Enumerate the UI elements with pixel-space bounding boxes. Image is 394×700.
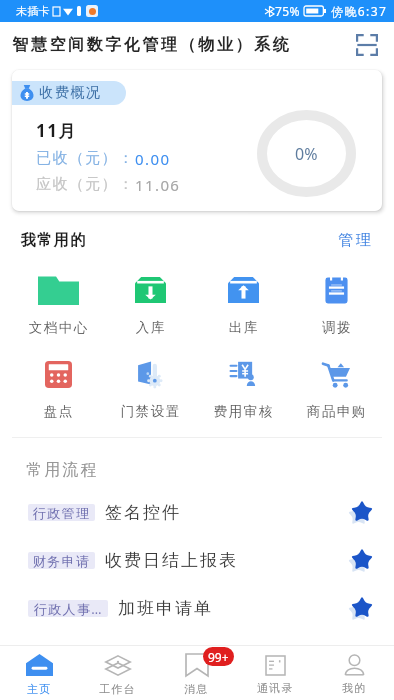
staticText: 主页 bbox=[27, 682, 52, 696]
staticText: 费用审核 bbox=[213, 403, 273, 420]
staticText: 商品申购 bbox=[306, 403, 366, 420]
staticText: 出库 bbox=[228, 319, 258, 336]
button[interactable]: 扫一扫 Scan bbox=[352, 30, 382, 60]
button[interactable]: 文档中心 bbox=[12, 275, 104, 336]
button[interactable]: 门禁设置 bbox=[104, 359, 196, 420]
button[interactable]: 工作台 bbox=[78, 650, 157, 700]
staticText: 消息 bbox=[184, 682, 209, 696]
staticText: 工作台 bbox=[99, 682, 136, 696]
button[interactable]: 我的 bbox=[315, 650, 394, 700]
button[interactable]: 99+ bbox=[157, 650, 236, 700]
staticText: 我的 bbox=[342, 681, 367, 695]
staticText: 入库 bbox=[135, 319, 165, 336]
button[interactable]: 主页 bbox=[0, 650, 78, 700]
button[interactable]: 出库 bbox=[196, 275, 289, 336]
staticText: 签名控件 bbox=[104, 502, 180, 523]
button[interactable]: 通讯录 bbox=[236, 650, 315, 700]
staticText: 75% bbox=[275, 3, 300, 19]
button[interactable]: 行政人事… bbox=[0, 584, 394, 632]
staticText: 11.06 bbox=[135, 175, 181, 195]
staticText: 通讯录 bbox=[257, 681, 294, 695]
staticText: 加班申请单 bbox=[117, 598, 212, 619]
staticText: 傍晚6:37 bbox=[331, 3, 388, 19]
button[interactable]: 盘点 bbox=[12, 359, 104, 420]
staticText: 文档中心 bbox=[28, 319, 88, 336]
staticText: 已收（元）： bbox=[36, 149, 135, 168]
staticText: 管理 bbox=[337, 231, 372, 250]
button[interactable]: 管理 bbox=[333, 227, 376, 254]
staticText: 智慧空间数字化管理（物业）系统 bbox=[11, 35, 290, 55]
button[interactable]: 商品申购 bbox=[289, 359, 382, 420]
button[interactable]: 财务申请 bbox=[0, 536, 394, 584]
staticText: 0% bbox=[295, 143, 318, 165]
button[interactable]: 收藏 Favorite bbox=[349, 547, 375, 573]
button[interactable]: 行政管理 bbox=[0, 488, 394, 536]
staticText: 11月 bbox=[36, 119, 77, 142]
button[interactable]: 收藏 Favorite bbox=[349, 595, 375, 621]
staticText: 0.00 bbox=[135, 149, 171, 169]
button[interactable]: 调拨 bbox=[289, 275, 382, 336]
staticText: 盘点 bbox=[43, 403, 73, 420]
staticText: 行政管理 bbox=[33, 505, 91, 521]
staticText: 收费日结上报表 bbox=[104, 550, 237, 571]
button[interactable]: 入库 bbox=[104, 275, 196, 336]
staticText: 常用流程 bbox=[26, 460, 99, 480]
button[interactable]: 费用审核 bbox=[196, 359, 289, 420]
staticText: 99+ bbox=[208, 649, 229, 665]
staticText: 门禁设置 bbox=[120, 403, 180, 420]
button[interactable]: 收藏 Favorite bbox=[349, 499, 375, 525]
staticText: 财务申请 bbox=[33, 553, 91, 569]
staticText: 行政人事… bbox=[34, 600, 103, 617]
staticText: 我常用的 bbox=[20, 231, 86, 250]
staticText: 调拨 bbox=[321, 319, 351, 336]
staticText: 收费概况 bbox=[39, 84, 102, 102]
staticText: 应收（元）： bbox=[36, 175, 135, 194]
staticText: 未插卡 bbox=[16, 4, 51, 18]
